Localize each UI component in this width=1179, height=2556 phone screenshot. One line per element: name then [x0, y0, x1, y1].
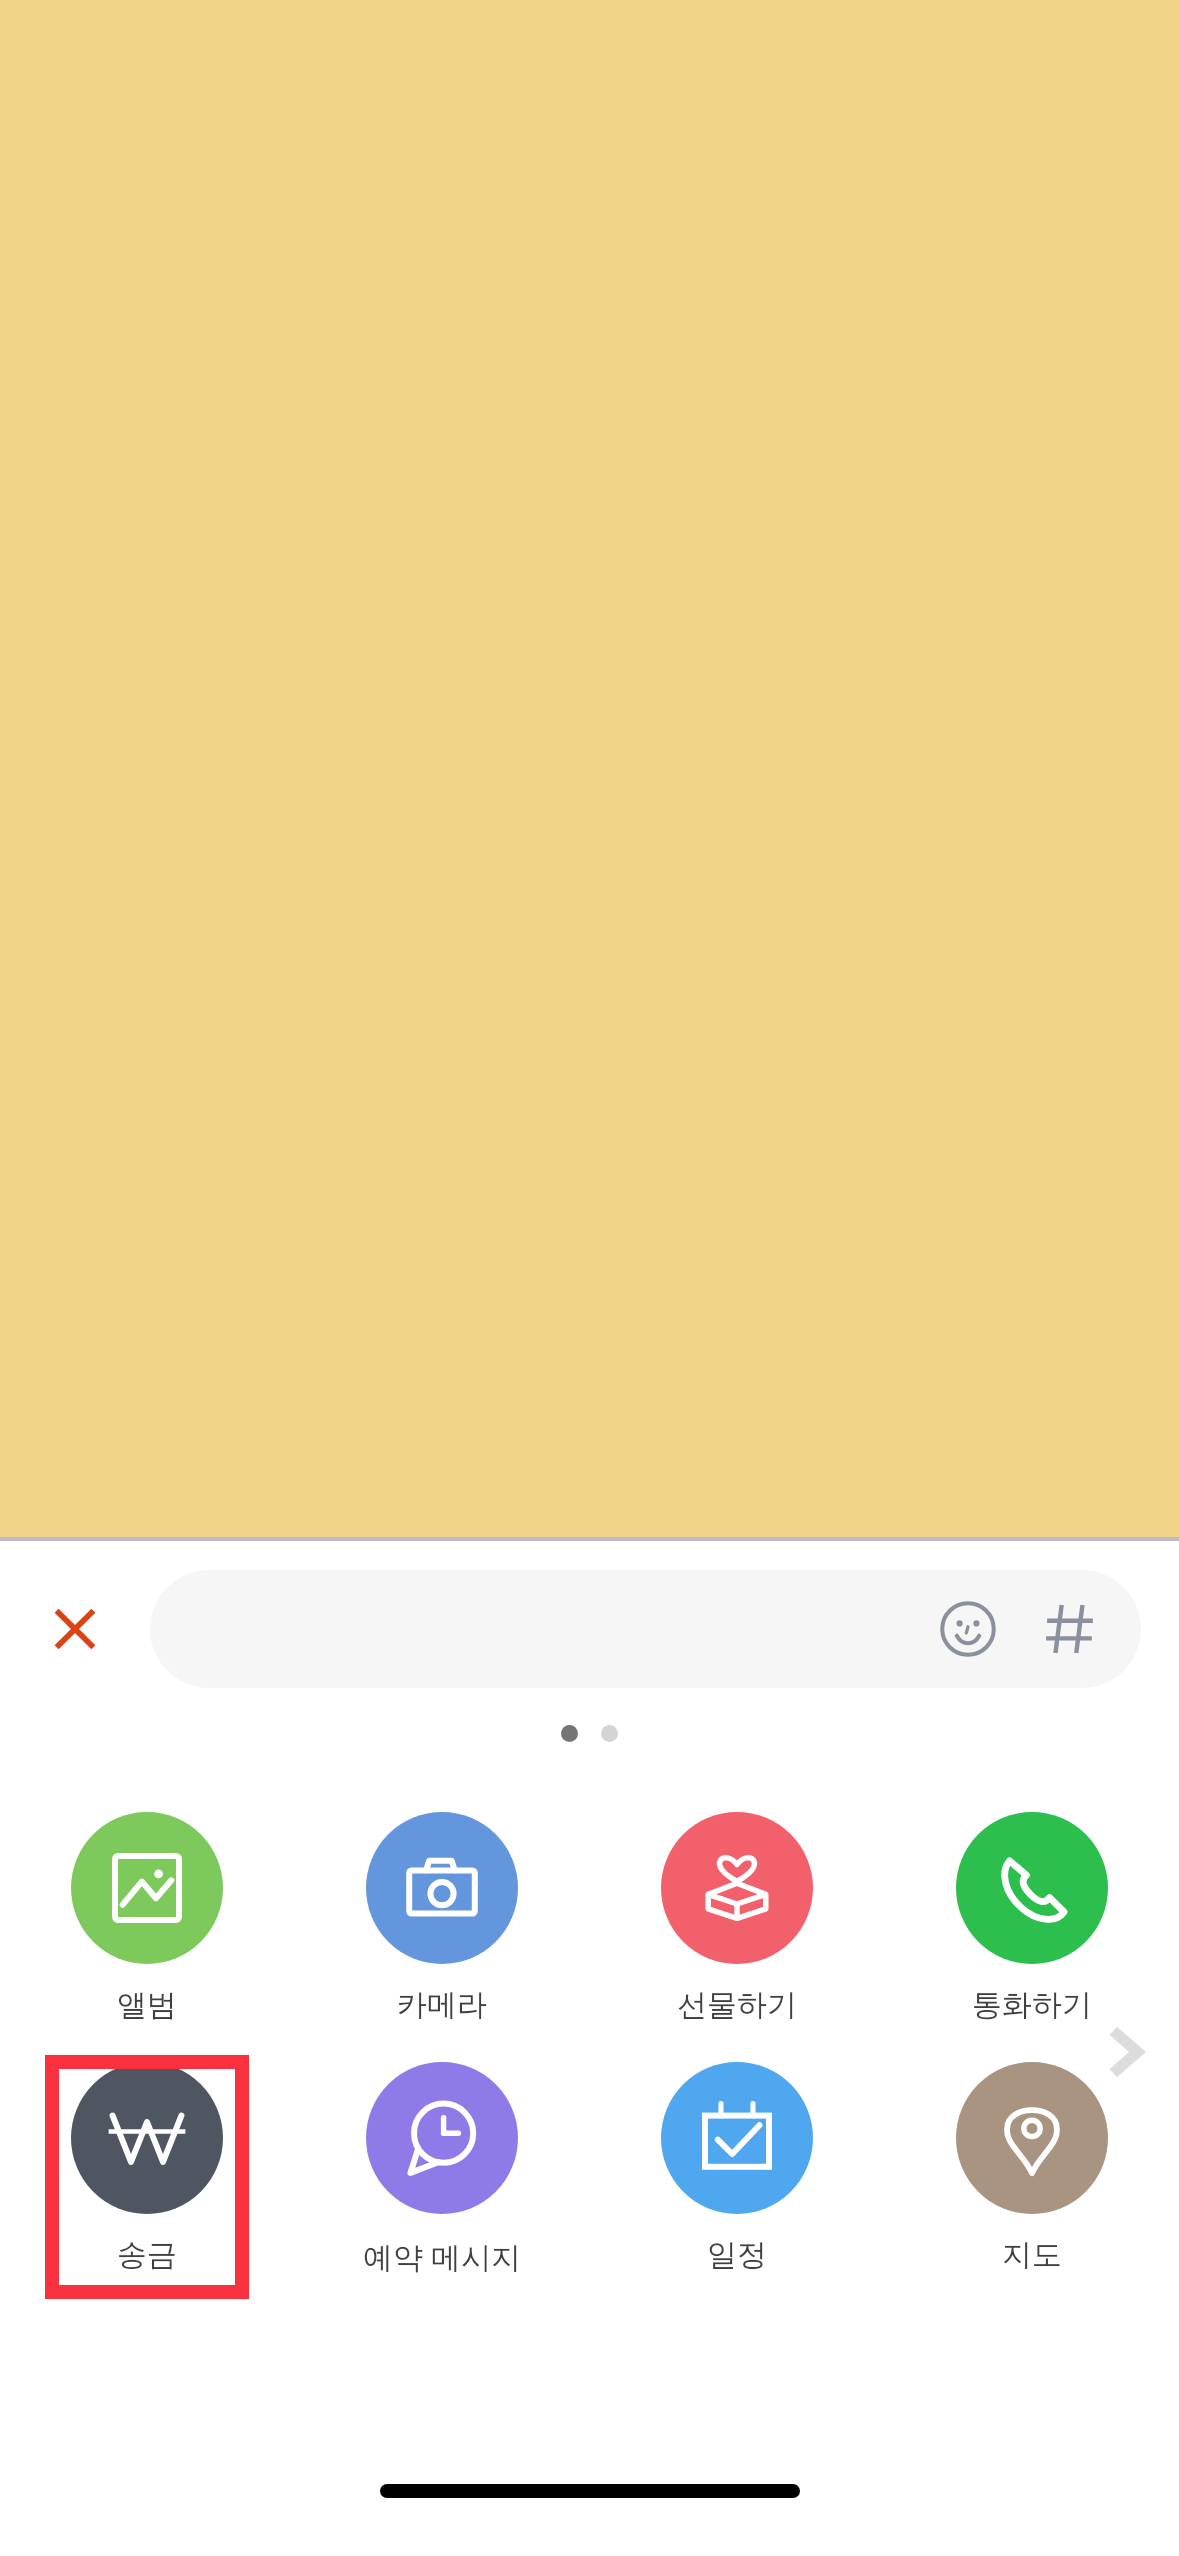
staticText: 일정 — [707, 2236, 767, 2274]
button[interactable]: Hashtag — [1033, 1592, 1107, 1666]
staticText: 통화하기 — [972, 1986, 1092, 2024]
staticText: 송금 — [117, 2236, 177, 2274]
button[interactable]: 카메라 — [294, 1802, 589, 2052]
button[interactable]: Next page — [1089, 2014, 1165, 2090]
button[interactable]: 통화하기 — [884, 1802, 1179, 2052]
staticText: 선물하기 — [677, 1986, 797, 2024]
button[interactable]: Emoji — [150, 1570, 1141, 1688]
staticText: 앨범 — [117, 1986, 177, 2024]
staticText: 카메라 — [397, 1986, 487, 2024]
button[interactable]: 송금 — [0, 2052, 294, 2302]
button[interactable]: 앨범 — [0, 1802, 294, 2052]
staticText: 지도 — [1002, 2236, 1062, 2274]
button[interactable]: Emoji — [931, 1592, 1005, 1666]
button[interactable]: Close — [0, 1567, 150, 1691]
staticText: 예약 메시지 — [363, 2236, 521, 2277]
button[interactable]: 선물하기 — [589, 1802, 884, 2052]
button[interactable]: 일정 — [589, 2052, 884, 2302]
button[interactable]: 예약 메시지 — [294, 2052, 589, 2302]
button[interactable]: 지도 — [884, 2052, 1179, 2302]
